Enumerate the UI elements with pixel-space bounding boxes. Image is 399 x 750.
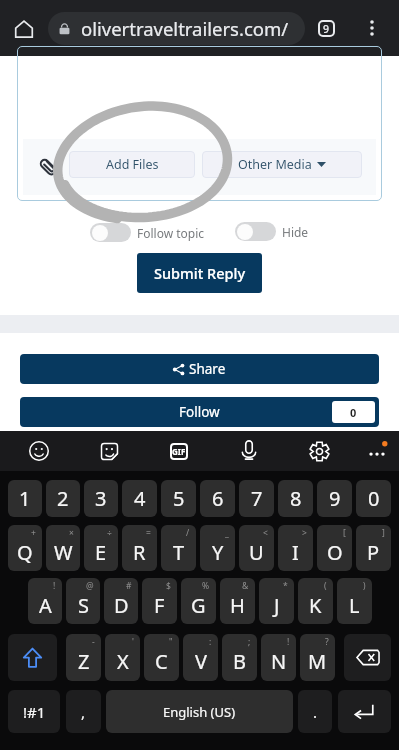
button[interactable]: Follow <box>20 397 379 427</box>
button[interactable]: shift <box>8 634 57 681</box>
staticText: $ <box>166 580 171 592</box>
staticText: Submit Reply <box>154 263 246 283</box>
button[interactable]: B <box>222 634 257 681</box>
staticText: GIF <box>172 446 186 457</box>
button[interactable]: K <box>298 578 333 624</box>
button[interactable]: M <box>300 634 335 681</box>
staticText: % <box>202 580 210 592</box>
button[interactable]: Other Media <box>202 151 362 178</box>
button[interactable]: More options <box>355 11 389 45</box>
staticText: Hide <box>282 224 309 240</box>
staticText: X <box>117 648 129 675</box>
button[interactable]: F <box>142 578 177 624</box>
button[interactable]: enter <box>338 690 391 733</box>
button[interactable]: Follow topic <box>90 223 131 242</box>
button[interactable]: R <box>122 525 157 571</box>
staticText: 4 <box>134 485 146 512</box>
staticText: & <box>242 580 249 592</box>
button[interactable]: . <box>298 690 332 733</box>
staticText: Y <box>212 539 224 566</box>
staticText: B <box>233 648 246 675</box>
button[interactable]: More <box>354 431 399 471</box>
staticText: H <box>230 592 245 619</box>
button[interactable]: H <box>220 578 255 624</box>
button[interactable]: D <box>104 578 138 624</box>
staticText: 6 <box>212 485 224 512</box>
button[interactable]: 8 <box>278 480 313 517</box>
button[interactable]: Voice input <box>214 431 284 471</box>
button[interactable]: V <box>183 634 218 681</box>
staticText: G <box>191 592 206 619</box>
staticText: ; <box>248 636 251 648</box>
button[interactable]: T <box>161 525 196 571</box>
button[interactable]: Stickers <box>74 431 144 471</box>
button[interactable]: L <box>337 578 372 624</box>
button[interactable]: backspace <box>344 634 391 681</box>
button[interactable]: A <box>28 578 62 624</box>
staticText: < <box>263 527 268 539</box>
staticText: Follow <box>179 403 220 421</box>
button[interactable]: olivertraveltrailers.com/ <box>48 12 305 45</box>
staticText: 9 <box>323 22 330 36</box>
button[interactable]: Hide <box>235 222 276 241</box>
staticText: [ <box>343 527 346 539</box>
staticText: olivertraveltrailers.com/ <box>81 16 289 41</box>
staticText: J <box>274 592 280 619</box>
button[interactable]: 4 <box>122 480 157 517</box>
button[interactable]: J <box>259 578 294 624</box>
button[interactable]: Q <box>8 525 42 571</box>
button[interactable]: S <box>66 578 100 624</box>
button[interactable]: X <box>105 634 140 681</box>
staticText: = <box>146 527 151 539</box>
button[interactable]: Z <box>66 634 101 681</box>
staticText: ] <box>382 527 385 539</box>
staticText: ! <box>53 580 56 592</box>
button[interactable]: 3 <box>84 480 118 517</box>
staticText: V <box>195 648 207 675</box>
button[interactable]: 1 <box>8 480 42 517</box>
staticText: M <box>308 648 327 675</box>
button[interactable]: Emoji <box>4 431 74 471</box>
button[interactable]: 5 <box>161 480 196 517</box>
staticText: : <box>209 636 212 648</box>
staticText: 0 <box>368 485 380 512</box>
button[interactable]: , <box>66 690 101 733</box>
button[interactable]: Add Files <box>69 151 195 178</box>
button[interactable]: 0 <box>356 480 391 517</box>
button[interactable]: G <box>181 578 216 624</box>
button[interactable]: P <box>356 525 391 571</box>
button[interactable]: 2 <box>46 480 80 517</box>
staticText: Other Media <box>238 156 312 173</box>
button[interactable]: Y <box>200 525 235 571</box>
button[interactable]: N <box>261 634 296 681</box>
staticText: ! <box>287 636 290 648</box>
button[interactable]: W <box>46 525 80 571</box>
button[interactable]: Home <box>7 12 40 45</box>
button[interactable]: Share <box>20 354 379 384</box>
button[interactable]: U <box>239 525 274 571</box>
button[interactable]: Submit Reply <box>137 253 262 293</box>
staticText: / <box>186 527 190 539</box>
button[interactable]: C <box>144 634 179 681</box>
staticText: English (US) <box>163 703 236 721</box>
staticText: 3 <box>95 485 107 512</box>
staticText: E <box>95 539 107 566</box>
button[interactable]: GIF <box>144 431 214 471</box>
staticText: - <box>92 636 95 648</box>
button[interactable]: Attach file <box>35 154 61 180</box>
staticText: F <box>154 592 165 619</box>
button[interactable]: English (US) <box>106 690 293 733</box>
staticText: Follow topic <box>137 225 205 241</box>
button[interactable]: Tabs <box>310 12 342 44</box>
button[interactable]: I <box>278 525 313 571</box>
staticText: A <box>39 592 52 619</box>
button[interactable]: Settings <box>284 431 354 471</box>
button[interactable]: 6 <box>200 480 235 517</box>
button[interactable]: !#1 <box>8 690 60 733</box>
staticText: . <box>313 702 318 722</box>
button[interactable]: O <box>317 525 352 571</box>
button[interactable]: 9 <box>317 480 352 517</box>
button[interactable]: E <box>84 525 118 571</box>
button[interactable]: 7 <box>239 480 274 517</box>
staticText: Z <box>78 648 90 675</box>
